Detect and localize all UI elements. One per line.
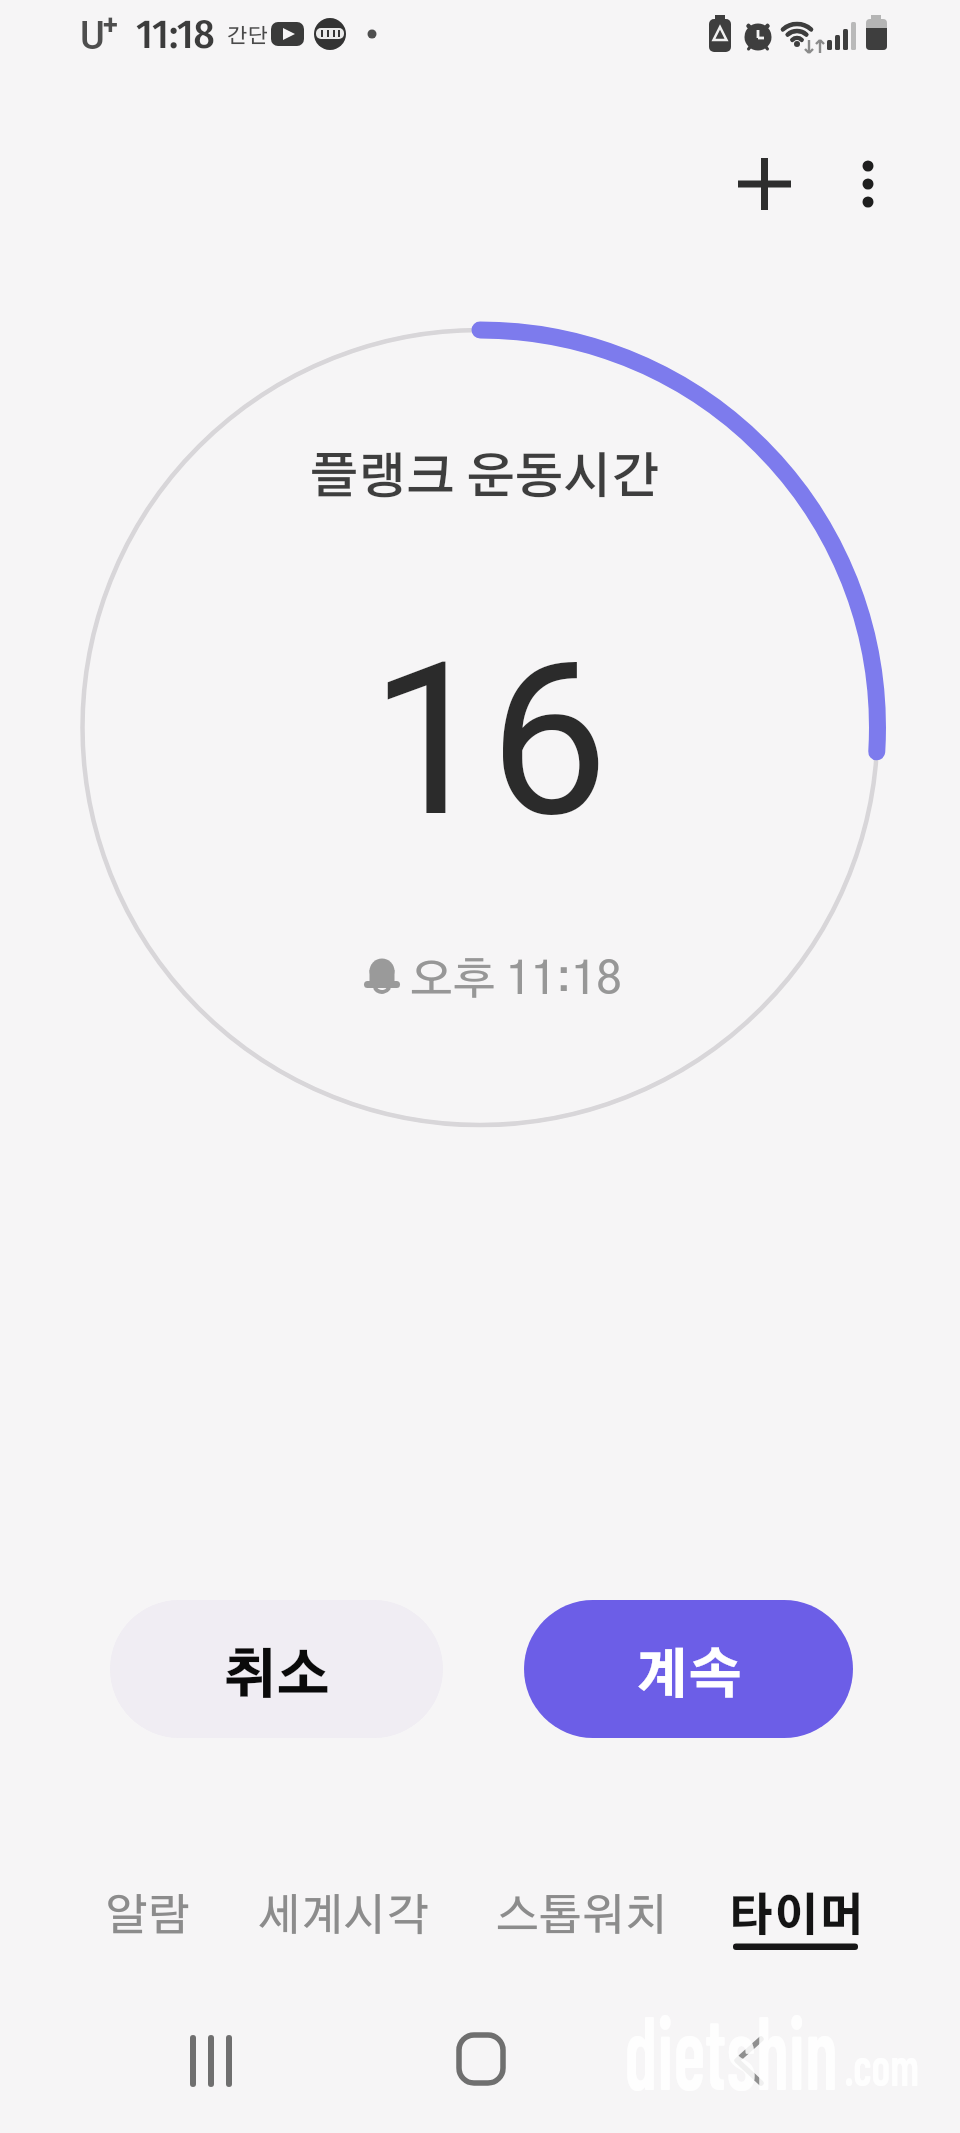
- staticText: 취소: [223, 1651, 330, 1704]
- button[interactable]: [731, 151, 797, 217]
- button[interactable]: 알람: [78, 1882, 218, 1952]
- staticText: 플랭크 운동시간: [310, 454, 660, 503]
- staticText: .com: [844, 2032, 920, 2097]
- button[interactable]: [842, 155, 894, 213]
- button[interactable]: 타이머: [711, 1882, 881, 1952]
- staticText: 세계시각: [258, 1895, 430, 1939]
- staticText: 오후 11:18: [410, 959, 622, 1003]
- button[interactable]: 계속: [524, 1600, 853, 1738]
- staticText: 계속: [635, 1651, 742, 1704]
- staticText: 스톱워치: [496, 1895, 668, 1939]
- button[interactable]: [180, 2025, 244, 2097]
- button[interactable]: 취소: [110, 1600, 443, 1738]
- staticText: 11:18: [136, 10, 215, 59]
- staticText: dietshin: [625, 1986, 838, 2106]
- button[interactable]: 스톱워치: [472, 1882, 692, 1952]
- staticText: 간단: [227, 26, 268, 47]
- button[interactable]: [718, 2025, 780, 2097]
- button[interactable]: [448, 2025, 514, 2095]
- staticText: +: [103, 9, 118, 41]
- staticText: 알람: [105, 1895, 191, 1939]
- staticText: U: [80, 14, 105, 59]
- staticText: 16: [370, 616, 609, 864]
- button[interactable]: 세계시각: [234, 1882, 454, 1952]
- staticText: 타이머: [728, 1895, 865, 1940]
